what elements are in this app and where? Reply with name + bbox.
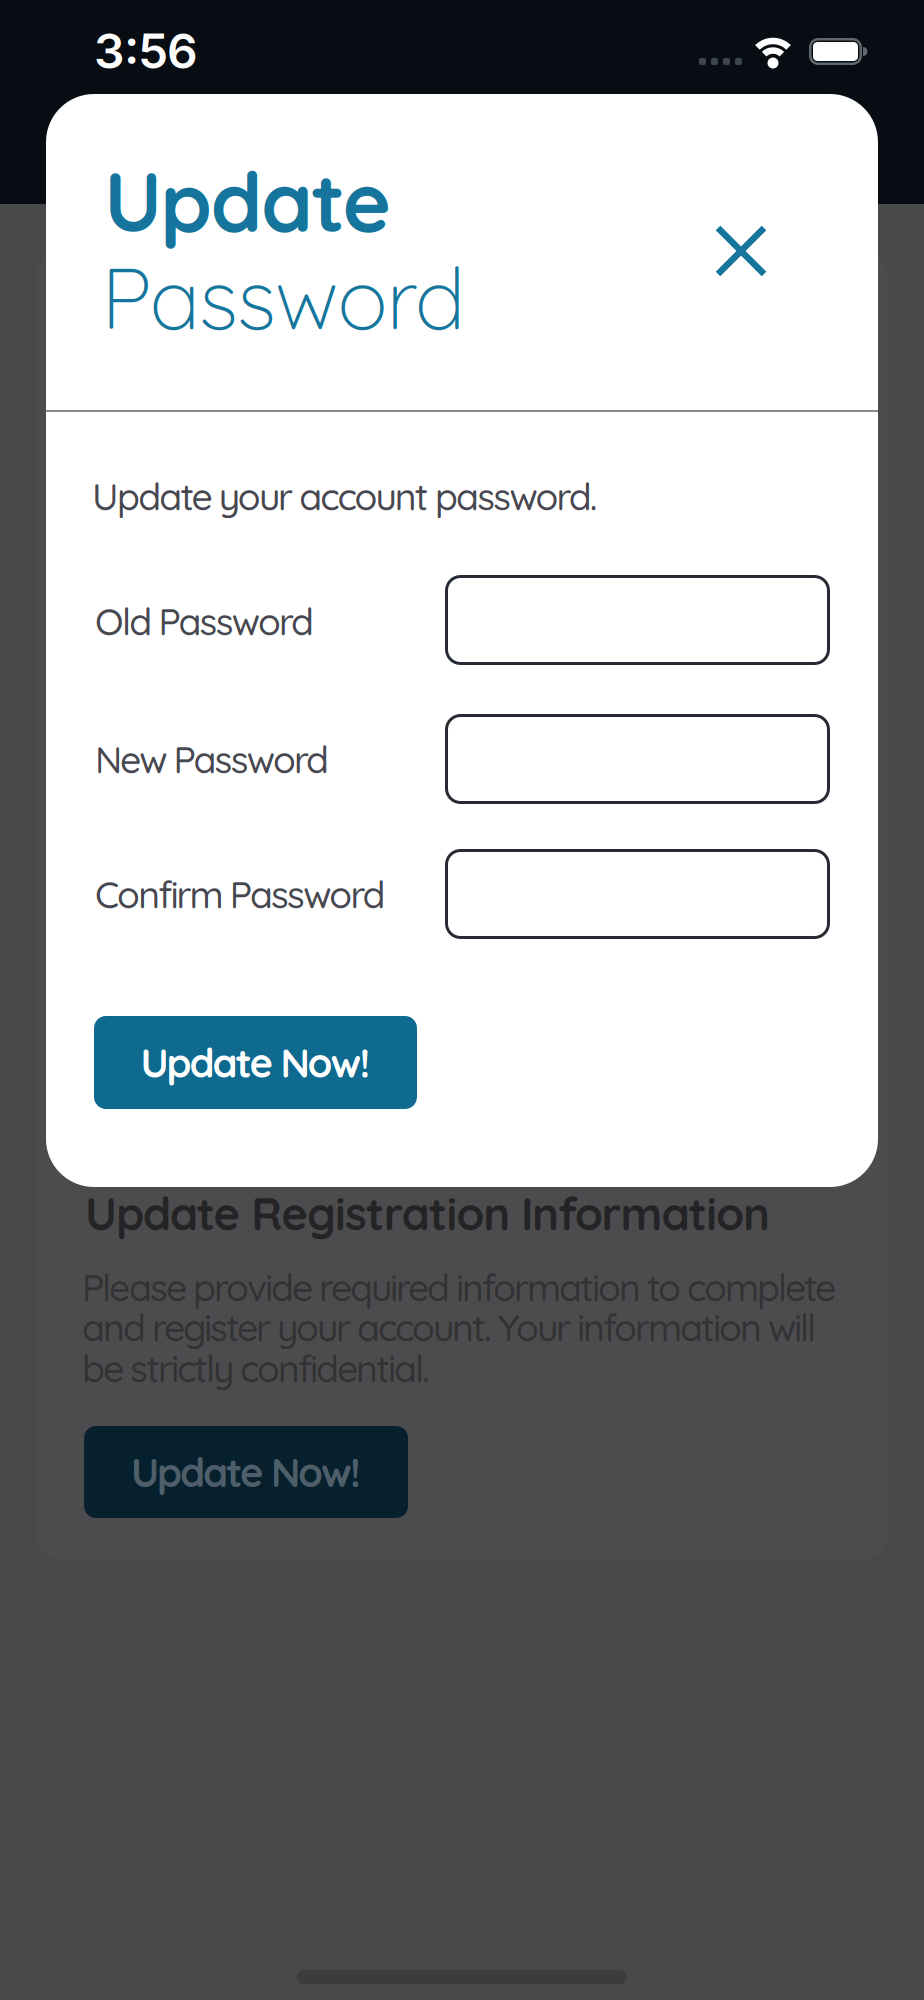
staticText: and register your account. Your informat… [82,1304,816,1351]
button[interactable]: Close [704,214,778,288]
staticText: Update [104,149,391,252]
staticText: Update Now! [140,1037,370,1087]
button[interactable]: Confirm Password [445,849,830,939]
staticText: Update Registration Information [85,1185,770,1242]
staticText: Password [101,244,465,351]
staticText: 3:56 [94,22,198,80]
staticText: Please provide required information to c… [82,1264,836,1311]
staticText: Update Now! [131,1447,361,1497]
button[interactable]: New Password [445,714,830,804]
button[interactable]: Update Now! [94,1016,417,1109]
staticText: Update your account password. [92,473,598,520]
staticText: be strictly confidential. [82,1345,430,1392]
staticText: Old Password [95,598,314,645]
staticText: Confirm Password [95,871,385,918]
button[interactable]: Old Password [445,575,830,665]
staticText: New Password [95,736,329,783]
